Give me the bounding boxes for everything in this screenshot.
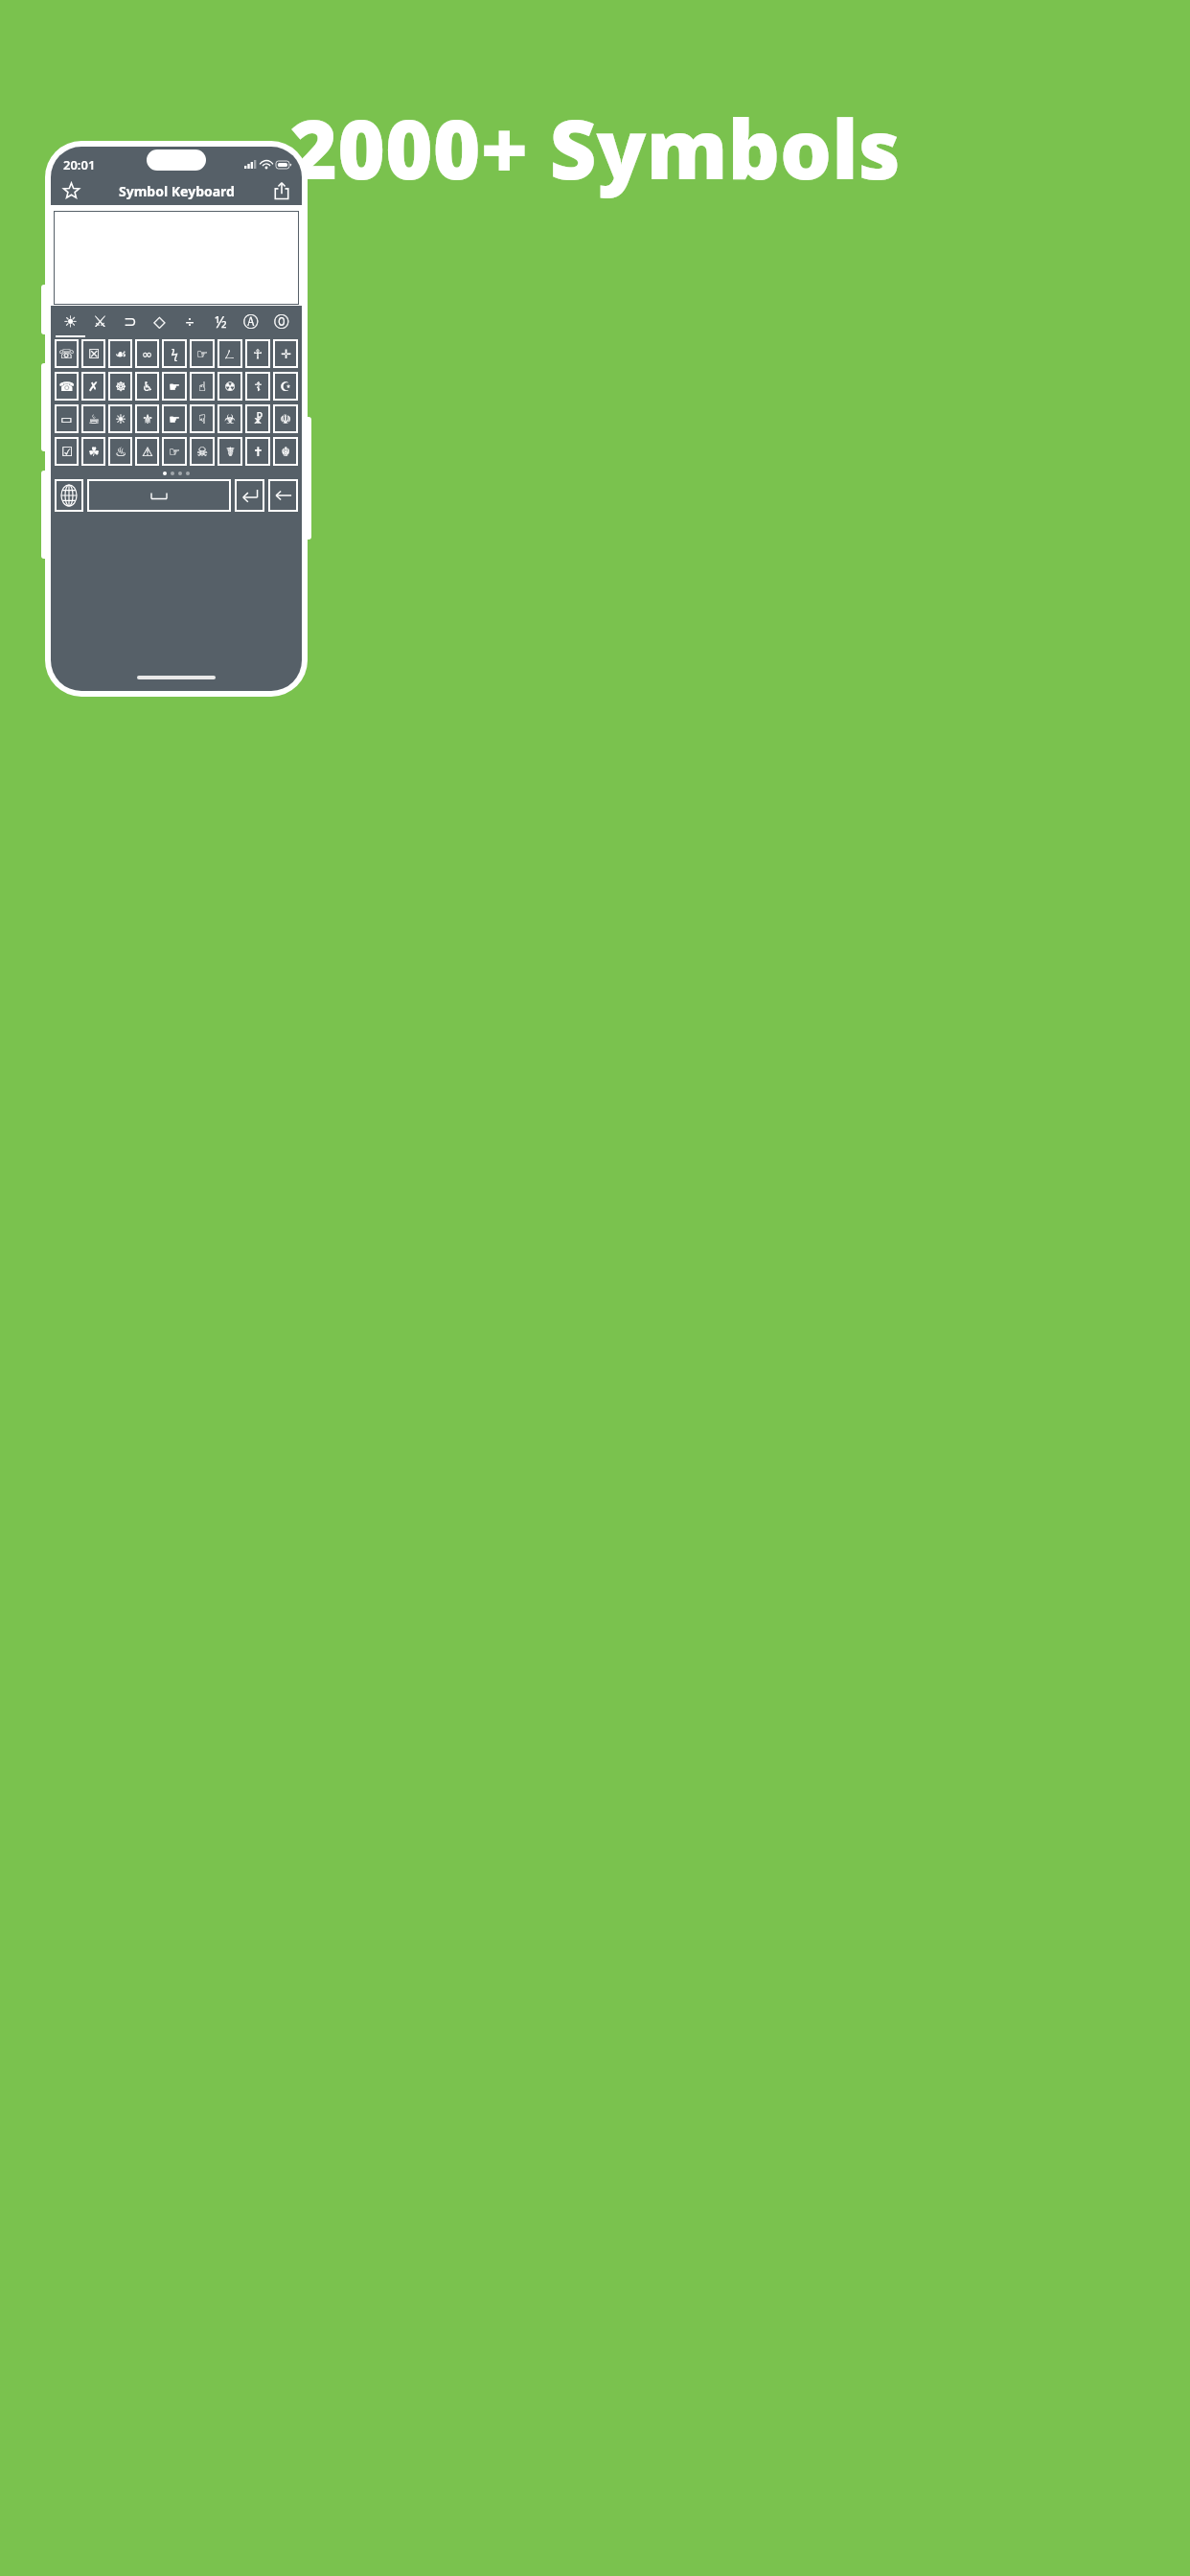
staticText: ☧ [253, 412, 263, 426]
button[interactable]: Category 4 [145, 306, 174, 337]
staticText: ⚜ [142, 412, 153, 426]
staticText: ⓪ [274, 312, 289, 332]
staticText: ☀ [63, 312, 78, 331]
staticText: ✛ [281, 347, 291, 361]
button[interactable]: Symbol ☣ [217, 404, 242, 433]
button[interactable]: Symbol ☢ [217, 372, 242, 401]
button[interactable]: Symbol ☸ [108, 372, 132, 401]
button[interactable]: Symbol ϟ [162, 339, 187, 368]
staticText: Symbol Keyboard [119, 182, 235, 200]
staticText: ☀ [115, 412, 126, 426]
staticText: ☞ [196, 347, 208, 361]
staticText: ♨ [115, 445, 126, 459]
staticText: ☢ [224, 379, 236, 394]
staticText: ☘ [88, 445, 100, 459]
staticText: ☝ [198, 379, 206, 394]
button[interactable]: Symbol ☟ [190, 404, 215, 433]
button[interactable]: Symbol ∞ [135, 339, 159, 368]
staticText: ☤ [226, 445, 235, 459]
button[interactable]: Share [268, 177, 295, 204]
staticText: ☸ [115, 379, 126, 394]
button[interactable]: Symbol ☝ [190, 372, 215, 401]
staticText: ☟ [198, 412, 206, 426]
button[interactable]: Symbol ☪ [273, 372, 298, 401]
button[interactable]: Symbol ☑ [55, 437, 79, 466]
button[interactable]: Symbol ☞ [190, 339, 215, 368]
staticText: ∞ [142, 347, 152, 361]
staticText: ☥ [253, 347, 263, 361]
button[interactable]: Category 6 [205, 306, 236, 337]
button[interactable]: Symbol ☒ [81, 339, 105, 368]
staticText: ☬ [281, 445, 290, 459]
button[interactable]: Symbol ☀ [108, 404, 132, 433]
staticText: ☛ [169, 412, 180, 426]
staticText: ☞ [169, 445, 180, 459]
staticText: ☙ [115, 347, 126, 361]
staticText: ☫ [280, 412, 291, 426]
staticText: ☑ [61, 445, 73, 459]
button[interactable]: Symbol ✗ [81, 372, 105, 401]
staticText: ☎ [58, 379, 75, 394]
button[interactable]: Backspace [268, 479, 298, 512]
staticText: ☒ [88, 347, 100, 361]
staticText: ◇ [153, 312, 166, 331]
button[interactable]: Symbol ✛ [273, 339, 298, 368]
button[interactable]: Symbol ☙ [108, 339, 132, 368]
staticText: ♿ [142, 379, 153, 394]
button[interactable]: Space [87, 479, 231, 512]
button[interactable]: Symbol ♿ [135, 372, 159, 401]
button[interactable]: Symbol ☘ [81, 437, 105, 466]
button[interactable]: Symbol ☛ [162, 404, 187, 433]
staticText: ▭ [60, 412, 73, 426]
button[interactable]: Return [235, 479, 264, 512]
staticText: ½ [215, 311, 227, 333]
staticText: ⊃ [124, 312, 137, 331]
staticText: Ⓐ [243, 312, 259, 332]
button[interactable]: Symbol ☦ [245, 372, 270, 401]
button[interactable]: Category 7 [236, 306, 266, 337]
button[interactable]: Symbol ☫ [273, 404, 298, 433]
staticText: ☛ [169, 379, 180, 394]
button[interactable]: Next keyboard [55, 479, 83, 512]
staticText: ☠ [196, 445, 208, 459]
button[interactable]: Symbol ☬ [273, 437, 298, 466]
button[interactable]: Symbol ▭ [55, 404, 79, 433]
staticText: ✝ [253, 445, 263, 459]
button[interactable]: Symbol ✝ [245, 437, 270, 466]
staticText: ☦ [254, 379, 263, 394]
staticText: ⚔ [93, 312, 107, 331]
staticText: ☏ [58, 347, 75, 361]
button[interactable]: Category 3 [115, 306, 145, 337]
button[interactable]: Category 5 [174, 306, 205, 337]
button[interactable]: Symbol ☞ [162, 437, 187, 466]
button[interactable]: Category 1 [56, 306, 85, 337]
staticText: ㄥ [223, 346, 237, 361]
staticText: ☣ [224, 412, 236, 426]
button[interactable]: Symbol ⚜ [135, 404, 159, 433]
button[interactable]: Category 2 [85, 306, 115, 337]
button[interactable]: Symbol ☥ [245, 339, 270, 368]
staticText: 2000+ Symbols [0, 92, 1190, 203]
staticText: ☪ [280, 379, 291, 394]
staticText: ☕ [88, 412, 100, 426]
button[interactable]: Symbol ☏ [55, 339, 79, 368]
button[interactable]: Symbol ☠ [190, 437, 215, 466]
button[interactable]: Symbol ㄥ [217, 339, 242, 368]
button[interactable]: Category 8 [266, 306, 297, 337]
button[interactable]: Favourites [57, 177, 84, 204]
button[interactable]: Symbol ☧ [245, 404, 270, 433]
staticText: ⚠ [142, 445, 153, 459]
button[interactable]: Symbol ♨ [108, 437, 132, 466]
staticText: ÷ [185, 311, 195, 333]
button[interactable]: Symbol ☎ [55, 372, 79, 401]
button[interactable]: Symbol ☕ [81, 404, 105, 433]
button[interactable]: Symbol ☤ [217, 437, 242, 466]
staticText: 20:01 [63, 156, 96, 173]
staticText: ϟ [171, 345, 178, 362]
staticText: ✗ [88, 379, 99, 394]
button[interactable]: Symbol ☛ [162, 372, 187, 401]
button[interactable]: Symbol ⚠ [135, 437, 159, 466]
